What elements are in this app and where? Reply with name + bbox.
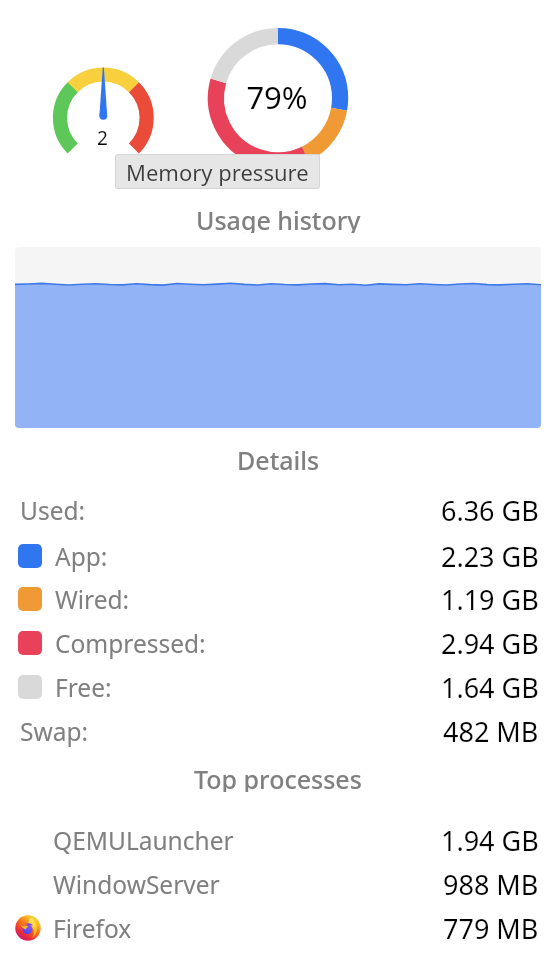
button[interactable]: Details — [0, 443, 556, 473]
button[interactable]: Free: — [0, 665, 556, 709]
button[interactable]: Swap: — [0, 709, 556, 753]
button[interactable]: Compressed: — [0, 621, 556, 665]
staticText: 779 MB — [443, 910, 539, 947]
button[interactable]: Memory pressure — [115, 154, 320, 189]
staticText: App: — [55, 540, 108, 573]
staticText: 79% — [246, 76, 308, 118]
staticText: Used: — [20, 494, 86, 527]
staticText: 988 MB — [443, 866, 539, 903]
button[interactable]: QEMULauncher — [0, 818, 556, 862]
staticText: 1.94 GB — [441, 822, 539, 859]
other: Firefox — [15, 915, 41, 941]
staticText: 1.19 GB — [441, 581, 539, 618]
button[interactable]: Firefox — [0, 906, 556, 950]
staticText: Compressed: — [55, 627, 206, 660]
button[interactable]: Usage history — [0, 203, 556, 233]
staticText: 2 — [97, 125, 108, 151]
staticText: QEMULauncher — [53, 824, 234, 857]
staticText: Free: — [55, 671, 112, 704]
button[interactable]: Wired: — [0, 577, 556, 621]
staticText: 2.23 GB — [441, 538, 539, 575]
staticText: 482 MB — [443, 713, 539, 750]
button[interactable]: Used: — [0, 488, 556, 532]
staticText: Details — [237, 443, 320, 473]
staticText: 2.94 GB — [441, 625, 539, 662]
staticText: Memory pressure — [126, 157, 309, 187]
staticText: Usage history — [196, 203, 361, 233]
staticText: Wired: — [55, 583, 130, 616]
staticText: Firefox — [53, 912, 132, 945]
button[interactable] — [15, 247, 541, 428]
staticText: 6.36 GB — [441, 492, 539, 529]
button[interactable]: WindowServer — [0, 862, 556, 906]
staticText: WindowServer — [53, 868, 220, 901]
staticText: 1.64 GB — [441, 669, 539, 706]
staticText: Top processes — [194, 762, 362, 792]
staticText: Swap: — [20, 715, 89, 748]
button[interactable]: App: — [0, 534, 556, 578]
button[interactable]: Top processes — [0, 762, 556, 792]
